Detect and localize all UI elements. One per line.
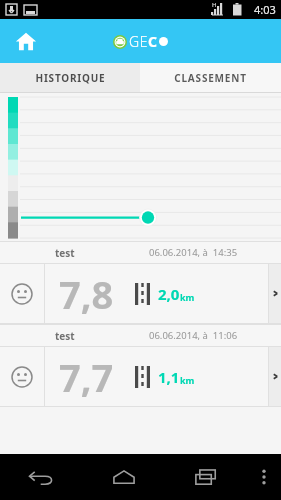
button[interactable]: Details bbox=[269, 264, 281, 323]
staticText: 7,7 bbox=[59, 351, 114, 403]
button[interactable]: HISTORIQUE bbox=[0, 63, 140, 92]
staticText: 4:03 bbox=[254, 2, 276, 17]
button[interactable]: test bbox=[0, 241, 281, 324]
button[interactable]: More options bbox=[247, 454, 281, 500]
staticText: test bbox=[55, 329, 75, 343]
button[interactable]: Home bbox=[83, 454, 165, 500]
staticText: H bbox=[212, 1, 217, 9]
button[interactable]: Recent apps bbox=[165, 454, 247, 500]
staticText: 06.06.2014, à 11:06 bbox=[149, 329, 238, 342]
button[interactable]: test bbox=[0, 324, 281, 407]
staticText: 1,1 bbox=[158, 367, 180, 387]
button[interactable]: Home bbox=[8, 23, 44, 59]
staticText: GE bbox=[129, 32, 148, 51]
staticText: km bbox=[180, 291, 195, 303]
staticText: 7,8 bbox=[59, 268, 114, 320]
button[interactable]: Details bbox=[269, 347, 281, 406]
staticText: CLASSEMENT bbox=[174, 71, 247, 85]
staticText: km bbox=[180, 374, 195, 386]
button[interactable]: CLASSEMENT bbox=[140, 63, 281, 92]
button[interactable]: Back bbox=[0, 454, 83, 500]
staticText: C bbox=[148, 32, 158, 51]
staticText: HISTORIQUE bbox=[35, 71, 106, 85]
staticText: test bbox=[55, 246, 75, 260]
staticText: 2,0 bbox=[158, 284, 180, 304]
staticText: 06.06.2014, à 14:35 bbox=[149, 246, 238, 259]
